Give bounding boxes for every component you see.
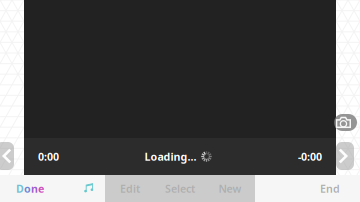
button[interactable]: Music <box>68 175 105 202</box>
staticText: Loading... <box>144 149 196 164</box>
button[interactable]: Edit <box>105 175 155 202</box>
button[interactable]: Select <box>155 175 205 202</box>
staticText: New <box>218 181 241 196</box>
staticText: -0:00 <box>298 149 322 164</box>
button[interactable]: End <box>305 175 355 202</box>
button[interactable]: Next <box>336 142 354 170</box>
button[interactable]: Camera <box>334 114 357 131</box>
staticText: D <box>16 181 24 196</box>
staticText: n <box>31 181 38 196</box>
button[interactable]: New <box>205 175 255 202</box>
button[interactable]: Previous <box>0 142 14 170</box>
staticText: End <box>320 181 340 196</box>
staticText: Select <box>165 181 195 196</box>
staticText: o <box>24 181 31 196</box>
staticText: e <box>38 181 44 196</box>
staticText: Edit <box>120 181 140 196</box>
button[interactable]: D <box>0 175 68 202</box>
staticText: 0:00 <box>38 149 59 164</box>
